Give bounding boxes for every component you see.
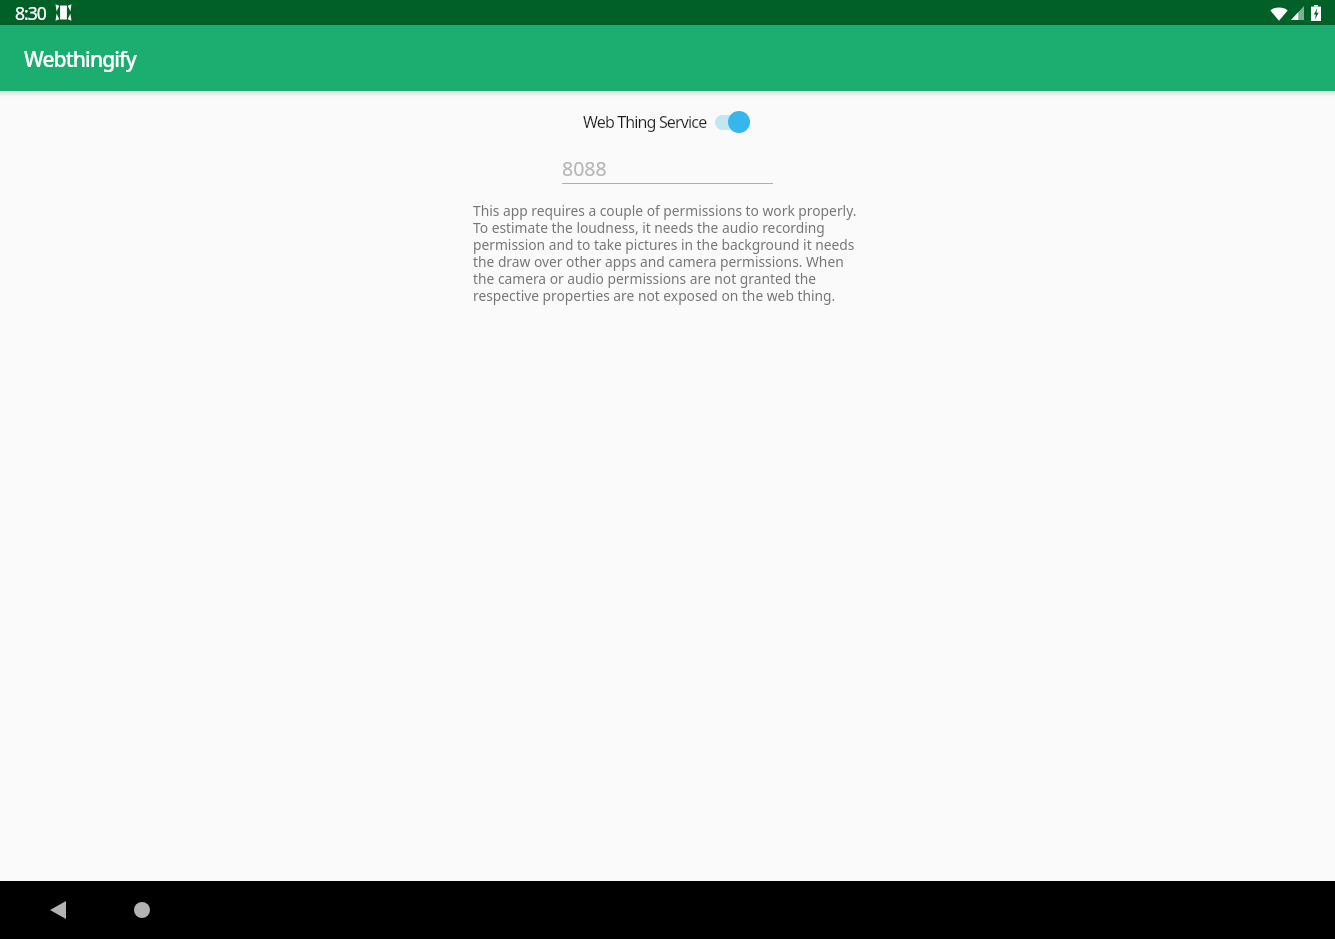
staticText: This app requires a couple of permission… bbox=[473, 201, 863, 305]
button[interactable]: Toggle Web Thing Service bbox=[715, 111, 749, 133]
staticText: Web Thing Service bbox=[583, 111, 707, 133]
staticText: Webthingify bbox=[24, 45, 136, 74]
button[interactable]: Web Thing Service bbox=[583, 108, 749, 136]
staticText: 8:30 bbox=[15, 1, 46, 25]
button[interactable]: Back bbox=[0, 881, 115, 939]
button[interactable]: Home bbox=[115, 881, 168, 939]
button[interactable]: 8088 bbox=[562, 155, 773, 184]
staticText: 8088 bbox=[562, 155, 607, 182]
